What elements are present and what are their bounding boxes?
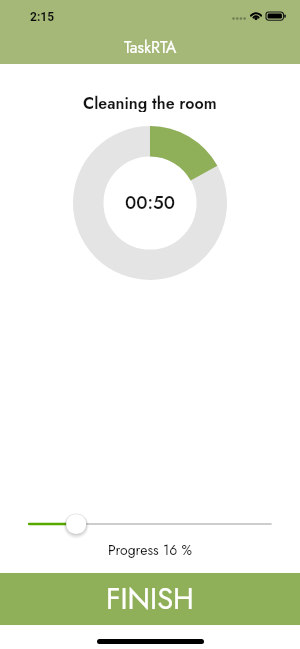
staticText: Cleaning the room — [83, 92, 217, 112]
staticText: Progress 16 % — [108, 540, 192, 558]
staticText: 00:50 — [125, 190, 176, 216]
staticText: FINISH — [106, 578, 194, 620]
button[interactable]: TaskRTA — [0, 30, 300, 64]
button[interactable]: FINISH — [0, 573, 300, 625]
other: Timer 00:50 remaining — [73, 126, 227, 280]
button[interactable]: Progress slider, 16 percent — [0, 510, 300, 538]
staticText: 2:15 — [30, 10, 55, 24]
staticText: TaskRTA — [124, 36, 177, 59]
other: Signal, Wi-Fi and battery status — [230, 7, 286, 23]
